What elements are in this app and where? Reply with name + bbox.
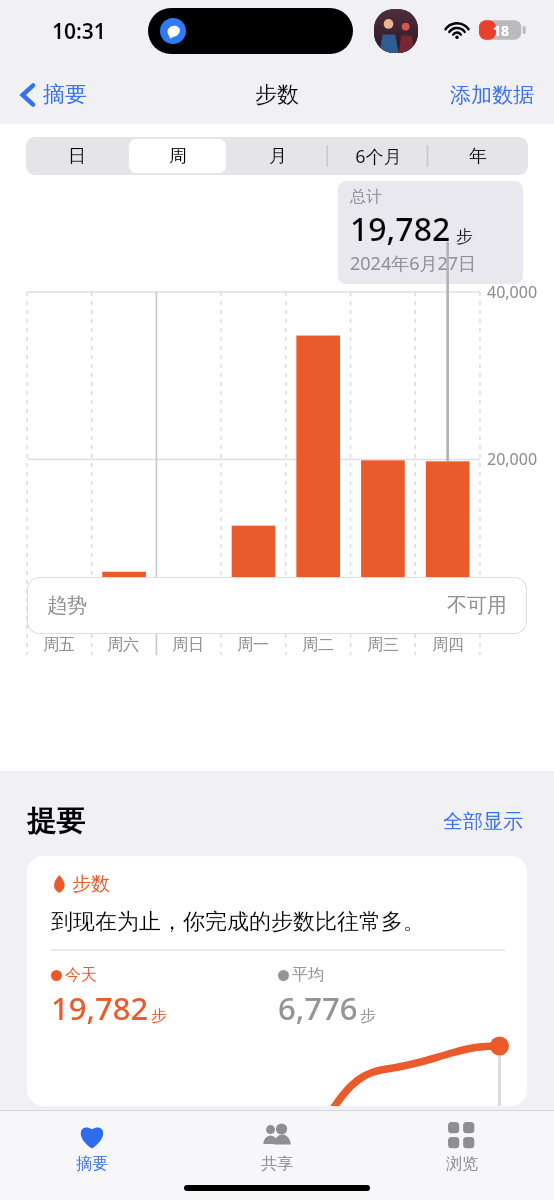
staticText: 10:31 xyxy=(52,17,106,46)
staticText: 步数 xyxy=(255,81,299,109)
staticText: 摘要 xyxy=(43,81,87,109)
staticText: 共享 xyxy=(261,1154,293,1174)
staticText: 步数 xyxy=(72,872,110,896)
staticText: 6个月 xyxy=(355,144,402,169)
staticText: 总计 xyxy=(350,187,382,207)
staticText: 40,000 xyxy=(487,281,538,303)
staticText: 周一 xyxy=(237,635,269,655)
button[interactable]: 摘要 xyxy=(14,75,93,115)
button[interactable]: 共享 xyxy=(184,1111,369,1200)
staticText: 周日 xyxy=(172,635,204,655)
button[interactable]: 全部显示 xyxy=(439,805,527,838)
staticText: 步 xyxy=(151,1006,167,1026)
staticText: 日 xyxy=(68,145,86,168)
button[interactable]: 趋势 xyxy=(27,577,527,634)
button[interactable]: 年 xyxy=(430,139,526,173)
staticText: 2024年6月27日 xyxy=(350,251,477,276)
staticText: 月 xyxy=(269,145,287,168)
staticText: 周二 xyxy=(302,635,334,655)
staticText: 趋势 xyxy=(47,593,87,618)
staticText: 周六 xyxy=(107,635,139,655)
staticText: 步 xyxy=(360,1006,376,1026)
staticText: 今天 xyxy=(65,965,97,985)
staticText: 提要 xyxy=(27,803,85,840)
button[interactable]: 添加数据 xyxy=(446,78,538,112)
other: Wi-Fi xyxy=(444,17,470,43)
staticText: 步 xyxy=(456,226,473,247)
staticText: 摘要 xyxy=(76,1154,108,1174)
staticText: 年 xyxy=(469,145,487,168)
staticText: 平均 xyxy=(292,965,324,985)
staticText: 到现在为止，你完成的步数比往常多。 xyxy=(51,908,425,936)
button[interactable]: 月 xyxy=(230,139,326,173)
staticText: 不可用 xyxy=(447,593,507,618)
staticText: 20,000 xyxy=(487,448,538,470)
staticText: 周三 xyxy=(367,635,399,655)
button[interactable]: 步数 xyxy=(27,856,527,1106)
staticText: 周四 xyxy=(432,635,464,655)
staticText: 19,782 xyxy=(51,987,149,1029)
button[interactable]: 周 xyxy=(129,139,226,173)
staticText: 浏览 xyxy=(446,1154,478,1174)
staticText: 周 xyxy=(169,145,187,168)
staticText: 周五 xyxy=(43,635,75,655)
button[interactable]: 6个月 xyxy=(330,139,426,173)
button[interactable]: 日 xyxy=(28,139,125,173)
staticText: 19,782 xyxy=(350,207,451,251)
button[interactable]: 浏览 xyxy=(369,1111,554,1200)
staticText: 6,776 xyxy=(278,987,358,1029)
staticText: 18 xyxy=(493,21,510,40)
button[interactable]: 摘要 xyxy=(0,1111,184,1200)
other: Battery 18 percent xyxy=(479,18,527,42)
